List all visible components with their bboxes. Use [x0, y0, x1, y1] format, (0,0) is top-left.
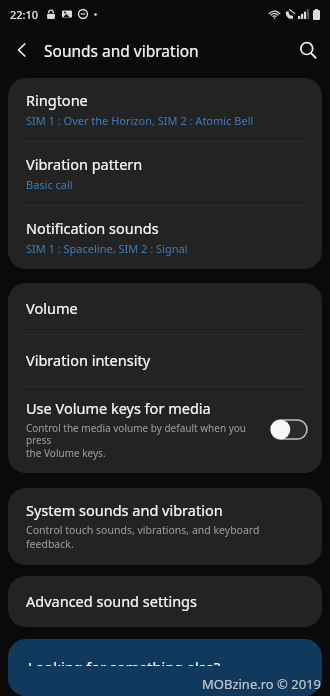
staticText: Ringtone — [26, 90, 88, 110]
staticText: System sounds and vibration — [26, 500, 223, 520]
staticText: Notification sounds — [26, 218, 159, 238]
button[interactable]: Ringtone — [8, 78, 322, 141]
staticText: Sounds and vibration — [44, 40, 286, 61]
button[interactable]: Use Volume keys for media toggle — [270, 419, 308, 440]
button[interactable]: Vibration intensity — [8, 335, 322, 386]
button[interactable]: Use Volume keys for media — [8, 387, 322, 473]
button[interactable]: Vibration pattern — [8, 142, 322, 205]
staticText: SIM 1 : Spaceline, SIM 2 : Signal — [26, 241, 188, 256]
button[interactable]: Back — [0, 28, 44, 72]
button[interactable]: Volume — [8, 283, 322, 334]
staticText: Basic call — [26, 177, 73, 192]
button[interactable]: Advanced sound settings — [8, 576, 322, 627]
staticText: Control the media volume by default when… — [26, 421, 262, 460]
staticText: MOBzine.ro © 2019 — [202, 675, 322, 693]
staticText: Vibration pattern — [26, 154, 143, 174]
staticText: Vibration intensity — [26, 350, 151, 370]
staticText: SIM 1 : Over the Horizon, SIM 2 : Atomic… — [26, 113, 254, 128]
button[interactable]: Notification sounds — [8, 206, 322, 269]
staticText: Advanced sound settings — [26, 591, 197, 611]
staticText: Use Volume keys for media — [26, 398, 211, 418]
staticText: Looking for something else? — [28, 657, 221, 666]
staticText: 22:10 — [10, 7, 39, 22]
staticText: Volume — [26, 298, 78, 318]
staticText: Control touch sounds, vibrations, and ke… — [26, 523, 306, 551]
button[interactable]: Search — [286, 28, 330, 72]
button[interactable]: System sounds and vibration — [8, 488, 322, 565]
